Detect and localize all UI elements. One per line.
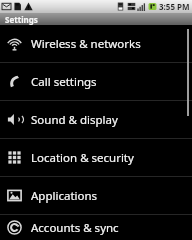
staticText: 3:55 PM <box>159 1 190 12</box>
staticText: Call settings <box>31 74 97 90</box>
staticText: Applications <box>31 188 98 204</box>
button[interactable]: Location and security <box>0 139 192 176</box>
button[interactable]: Call settings <box>0 63 192 100</box>
staticText: Location & security <box>31 150 134 166</box>
staticText: Sound & display <box>31 112 118 128</box>
button[interactable]: Sound and display <box>0 101 192 138</box>
staticText: Wireless & networks <box>31 36 141 52</box>
button[interactable]: Wireless and networks <box>0 25 192 62</box>
staticText: Accounts & sync <box>31 220 119 236</box>
button[interactable]: Applications <box>0 177 192 214</box>
staticText: Settings <box>5 14 38 25</box>
button[interactable]: Accounts and sync <box>0 215 192 240</box>
